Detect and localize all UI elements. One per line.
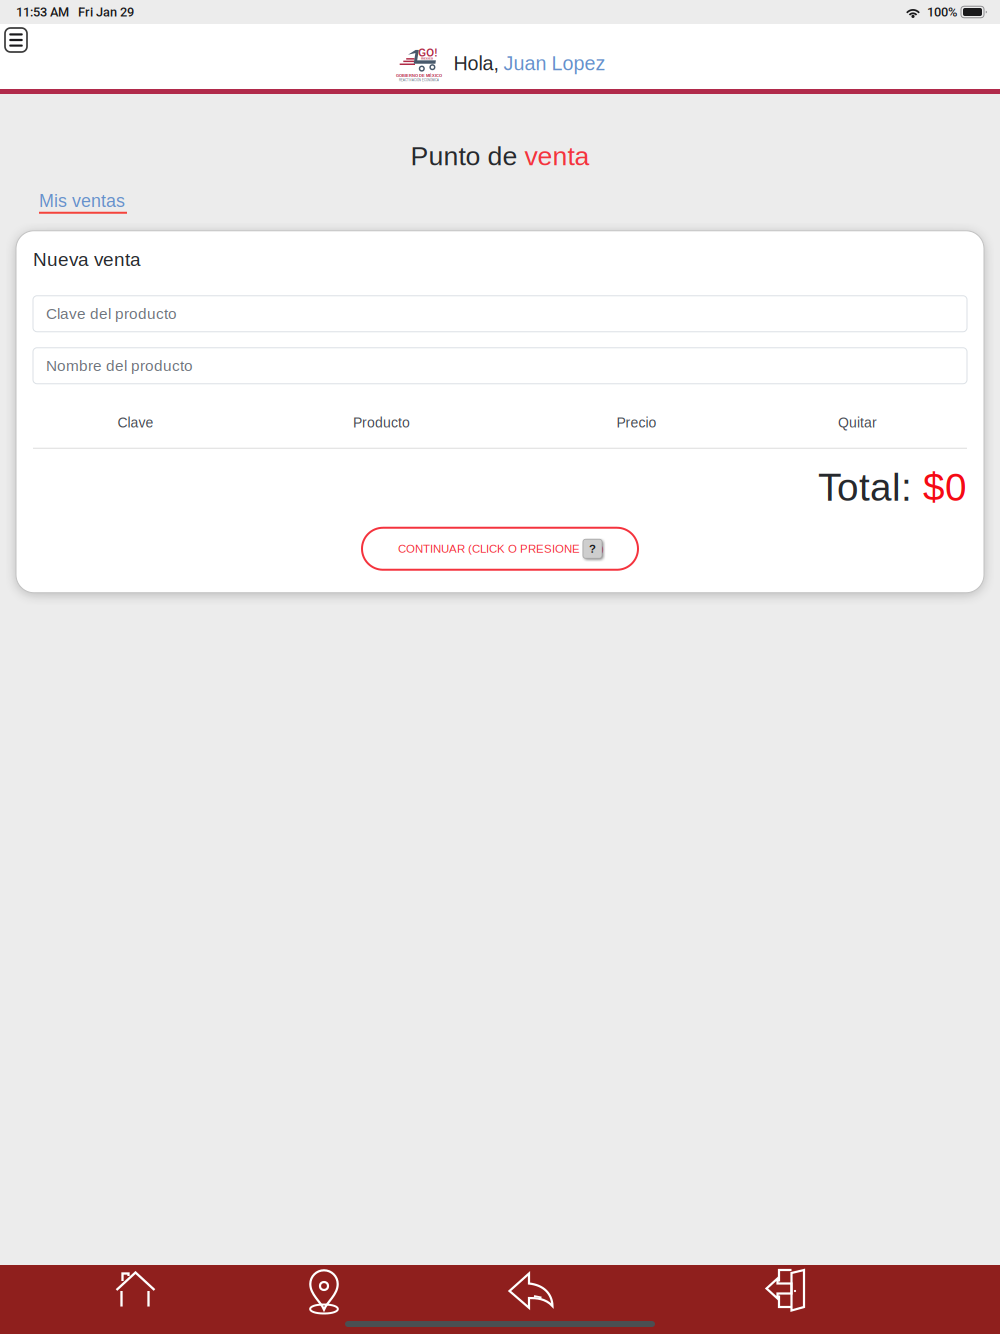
- staticText: Quitar: [838, 415, 877, 430]
- button[interactable]: Ubicación: [230, 1265, 427, 1334]
- staticText: ): [600, 542, 604, 555]
- staticText: Clave: [117, 415, 153, 430]
- staticText: 100%: [927, 4, 957, 19]
- button[interactable]: Regresar: [427, 1265, 658, 1334]
- staticText: 11:53 AM: [16, 4, 69, 19]
- staticText: Clave del producto: [46, 305, 177, 322]
- staticText: Fri Jan 29: [78, 4, 134, 19]
- staticText: Producto: [353, 415, 410, 430]
- staticText: Hola,: [453, 52, 503, 74]
- staticText: CONTINUAR (CLICK O PRESIONE: [398, 542, 583, 555]
- staticText: GO!: [418, 47, 437, 59]
- button[interactable]: Mis ventas: [39, 191, 127, 214]
- staticText: Precio: [616, 415, 656, 430]
- staticText: GOBIERNO DE MÉXICO: [396, 73, 442, 78]
- staticText: Mis ventas: [39, 191, 125, 211]
- staticText: venta: [524, 141, 589, 171]
- button[interactable]: Menú: [5, 28, 27, 52]
- staticText: $0: [923, 466, 967, 509]
- staticText: mexico: [421, 56, 433, 60]
- button[interactable]: Salir: [658, 1265, 1000, 1334]
- button[interactable]: Inicio: [0, 1265, 230, 1334]
- staticText: ?: [589, 542, 596, 555]
- staticText: REACTIVACIÓN ECONÓMICA: [399, 79, 439, 82]
- button[interactable]: CONTINUAR (CLICK O PRESIONE: [362, 528, 638, 570]
- staticText: Total:: [818, 466, 923, 509]
- staticText: Juan Lopez: [503, 52, 605, 74]
- staticText: Nueva venta: [33, 249, 141, 270]
- staticText: Punto de: [410, 141, 524, 171]
- staticText: Nombre del producto: [46, 357, 193, 374]
